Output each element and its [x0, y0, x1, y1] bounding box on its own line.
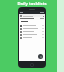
button[interactable]	[20, 24, 44, 27]
button[interactable]	[21, 21, 43, 22]
staticText: Daily tasklists	[17, 1, 47, 7]
button[interactable]: Daily tasklists	[0, 0, 64, 7]
button[interactable]: Add task	[38, 54, 43, 59]
button[interactable]	[20, 30, 44, 33]
button[interactable]	[19, 14, 45, 17]
button[interactable]	[20, 33, 44, 36]
button[interactable]	[20, 27, 44, 30]
button[interactable]	[19, 17, 45, 20]
button[interactable]	[20, 36, 44, 39]
